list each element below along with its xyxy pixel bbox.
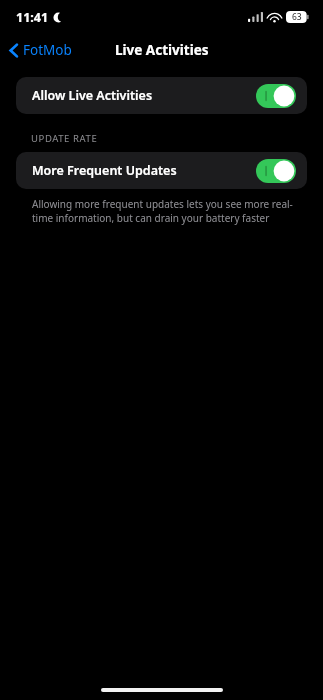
staticText: Live Activities	[115, 41, 209, 59]
staticText: More Frequent Updates	[32, 162, 177, 179]
staticText: UPDATE RATE	[31, 132, 98, 145]
other: Back	[9, 43, 18, 58]
button[interactable]: Allow Live Activities	[16, 77, 307, 114]
button[interactable]: More Frequent Updates	[16, 152, 307, 189]
staticText: 63	[292, 11, 302, 23]
button[interactable]: Toggle	[256, 159, 296, 183]
staticText: FotMob	[23, 41, 72, 59]
staticText: Allowing more frequent updates lets you …	[32, 197, 293, 225]
staticText: 11:41	[16, 9, 49, 26]
staticText: Allow Live Activities	[32, 87, 153, 104]
button[interactable]: Back	[0, 37, 80, 63]
button[interactable]: Toggle	[256, 84, 296, 108]
